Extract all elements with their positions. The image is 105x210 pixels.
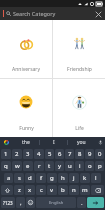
button[interactable]: y xyxy=(55,161,64,171)
staticText: d xyxy=(28,174,32,182)
staticText: 7 xyxy=(68,150,72,158)
button[interactable]: 6 xyxy=(55,149,64,159)
button[interactable]: . xyxy=(77,197,86,208)
button[interactable]: Voice input xyxy=(95,137,105,147)
staticText: . xyxy=(81,199,83,207)
staticText: 5 xyxy=(48,150,52,158)
staticText: p xyxy=(98,162,102,170)
staticText: the xyxy=(22,139,30,146)
staticText: y xyxy=(58,162,62,170)
button[interactable]: 4 xyxy=(34,149,44,159)
button[interactable]: e xyxy=(23,161,33,171)
staticText: 6 xyxy=(58,150,62,158)
button[interactable]: , xyxy=(16,197,25,208)
button[interactable]: d xyxy=(25,173,35,183)
staticText: 9 xyxy=(88,150,92,158)
button[interactable]: Google xyxy=(0,137,13,147)
button[interactable]: g xyxy=(47,173,57,183)
button[interactable]: Clear search xyxy=(94,10,102,18)
button[interactable]: 7 xyxy=(65,149,74,159)
staticText: u xyxy=(68,162,72,170)
button[interactable]: u xyxy=(65,161,74,171)
staticText: l xyxy=(95,174,97,182)
button[interactable]: Search Category xyxy=(0,7,105,20)
button[interactable]: Life xyxy=(53,79,105,137)
button[interactable]: k xyxy=(80,173,90,183)
staticText: Funny xyxy=(19,125,34,132)
staticText: Friendship xyxy=(67,66,92,73)
staticText: English xyxy=(49,200,64,206)
button[interactable]: l xyxy=(91,173,101,183)
button[interactable]: x xyxy=(25,185,35,195)
button[interactable]: Emoji xyxy=(26,197,35,208)
staticText: Search Category xyxy=(13,10,56,17)
button[interactable]: you xyxy=(68,137,95,147)
staticText: n xyxy=(72,186,76,194)
button[interactable]: w xyxy=(12,161,22,171)
button[interactable]: 9 xyxy=(85,149,94,159)
button[interactable]: q xyxy=(1,161,11,171)
button[interactable]: h xyxy=(58,173,68,183)
staticText: o xyxy=(88,162,92,170)
button[interactable]: Anniversary xyxy=(0,20,52,78)
button[interactable]: p xyxy=(95,161,104,171)
button[interactable]: ?123 xyxy=(1,197,15,208)
staticText: t xyxy=(48,162,51,170)
button[interactable]: the xyxy=(13,137,39,147)
staticText: 2 xyxy=(15,150,19,158)
staticText: i xyxy=(79,162,81,170)
button[interactable]: j xyxy=(69,173,79,183)
staticText: 1 xyxy=(4,150,8,158)
button[interactable]: v xyxy=(47,185,57,195)
staticText: I xyxy=(53,139,55,146)
staticText: f xyxy=(40,174,43,182)
button[interactable]: c xyxy=(36,185,46,195)
staticText: q xyxy=(4,162,8,170)
button[interactable]: 0 xyxy=(95,149,104,159)
button[interactable]: 5 xyxy=(45,149,54,159)
button[interactable]: o xyxy=(85,161,94,171)
button[interactable]: Backspace xyxy=(91,185,104,195)
button[interactable]: r xyxy=(34,161,44,171)
button[interactable]: i xyxy=(75,161,84,171)
staticText: a xyxy=(7,174,11,182)
button[interactable]: 8 xyxy=(75,149,84,159)
button[interactable]: t xyxy=(45,161,54,171)
staticText: j xyxy=(73,174,75,182)
staticText: 3 xyxy=(26,150,30,158)
button[interactable]: 3 xyxy=(23,149,33,159)
staticText: v xyxy=(50,186,54,194)
button[interactable]: 1 xyxy=(1,149,11,159)
staticText: k xyxy=(83,174,87,182)
staticText: z xyxy=(18,186,21,194)
button[interactable]: Friendship xyxy=(53,20,105,78)
staticText: Life xyxy=(75,125,84,132)
staticText: e xyxy=(26,162,30,170)
button[interactable]: b xyxy=(58,185,68,195)
staticText: 4 xyxy=(37,150,41,158)
staticText: h xyxy=(61,174,65,182)
button[interactable]: m xyxy=(80,185,90,195)
staticText: , xyxy=(20,199,22,207)
staticText: you xyxy=(77,139,86,146)
staticText: w xyxy=(15,162,20,170)
button[interactable]: f xyxy=(36,173,46,183)
button[interactable]: z xyxy=(14,185,24,195)
button[interactable]: Funny xyxy=(0,79,52,137)
staticText: g xyxy=(50,174,54,182)
button[interactable]: I xyxy=(40,137,67,147)
button[interactable]: n xyxy=(69,185,79,195)
staticText: s xyxy=(18,174,21,182)
button[interactable]: s xyxy=(14,173,24,183)
button[interactable]: Shift xyxy=(1,185,13,195)
staticText: m xyxy=(82,186,88,194)
staticText: b xyxy=(61,186,65,194)
staticText: r xyxy=(38,162,41,170)
button[interactable]: a xyxy=(4,173,13,183)
staticText: 8 xyxy=(78,150,82,158)
button[interactable]: Enter xyxy=(87,197,104,208)
staticText: c xyxy=(40,186,43,194)
button[interactable]: English xyxy=(36,197,76,208)
button[interactable]: 2 xyxy=(12,149,22,159)
staticText: 0 xyxy=(98,150,102,158)
